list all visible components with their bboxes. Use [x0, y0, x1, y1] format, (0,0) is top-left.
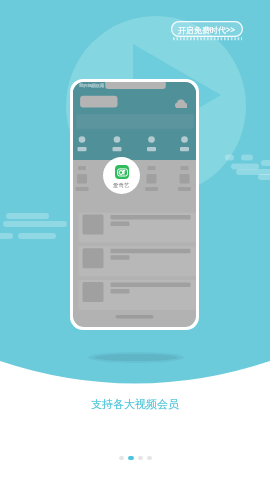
button[interactable]	[147, 456, 152, 460]
button[interactable]	[138, 456, 143, 460]
button[interactable]	[128, 456, 134, 460]
button[interactable]: 爱奇艺	[103, 157, 140, 194]
staticText: 我的视频收藏	[79, 83, 105, 88]
button[interactable]: 开启免费时代>>	[171, 21, 243, 37]
staticText: 爱奇艺	[113, 182, 130, 189]
staticText: 开启免费时代>>	[178, 24, 236, 35]
button[interactable]	[119, 456, 124, 460]
staticText: 支持各大视频会员	[91, 397, 179, 411]
